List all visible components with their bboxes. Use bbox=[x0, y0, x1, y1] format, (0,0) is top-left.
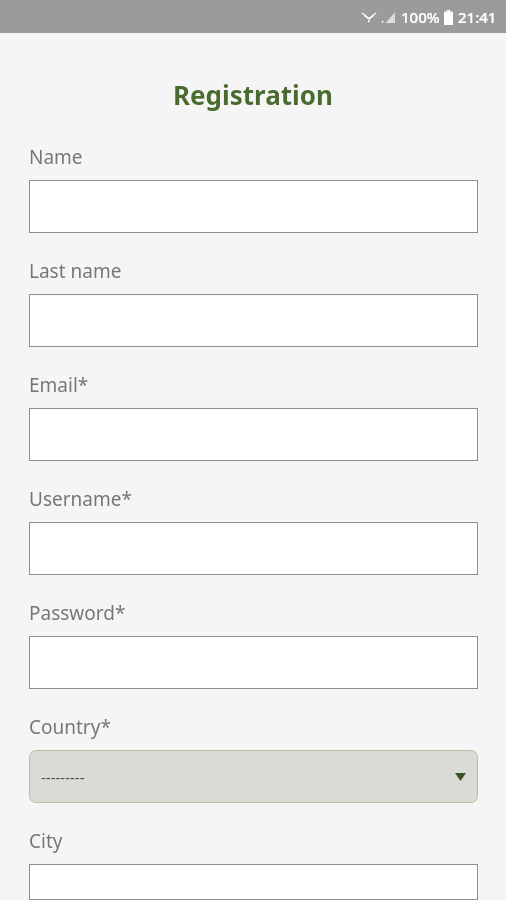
button[interactable] bbox=[29, 522, 478, 575]
staticText: Name bbox=[29, 144, 83, 170]
button[interactable] bbox=[29, 636, 478, 689]
button[interactable] bbox=[29, 864, 478, 900]
staticText: Password* bbox=[29, 600, 126, 626]
button[interactable] bbox=[29, 408, 478, 461]
staticText: 21:41 bbox=[458, 7, 497, 27]
staticText: 100% bbox=[401, 7, 440, 27]
staticText: Registration bbox=[0, 77, 506, 112]
staticText: Username* bbox=[29, 486, 132, 512]
button[interactable] bbox=[29, 180, 478, 233]
button[interactable] bbox=[29, 294, 478, 347]
button[interactable]: Select country bbox=[29, 750, 478, 803]
staticText: Email* bbox=[29, 372, 89, 398]
staticText: Last name bbox=[29, 258, 122, 284]
staticText: Country* bbox=[29, 714, 111, 740]
staticText: --------- bbox=[41, 767, 85, 787]
staticText: City bbox=[29, 828, 63, 854]
